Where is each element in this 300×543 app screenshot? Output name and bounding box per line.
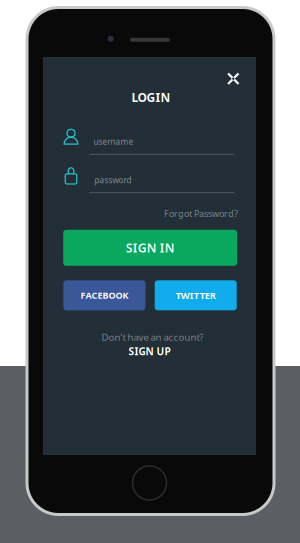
button[interactable]: Close	[219, 65, 247, 93]
staticText: Don't have an account?	[101, 330, 203, 343]
button[interactable]: Forgot Password?	[164, 207, 238, 219]
button[interactable]: SIGN IN	[63, 230, 237, 266]
staticText: password	[94, 174, 131, 186]
staticText: Forgot Password?	[164, 207, 238, 219]
staticText: FACEBOOK	[80, 289, 128, 301]
button[interactable]: SIGN UP	[128, 344, 170, 358]
button[interactable]: TWITTER	[155, 280, 237, 310]
staticText: SIGN UP	[128, 344, 170, 358]
button[interactable]: FACEBOOK	[63, 280, 145, 310]
staticText: TWITTER	[176, 289, 216, 302]
staticText: username	[93, 136, 133, 147]
staticText: LOGIN	[131, 89, 170, 105]
staticText: SIGN IN	[126, 239, 175, 256]
